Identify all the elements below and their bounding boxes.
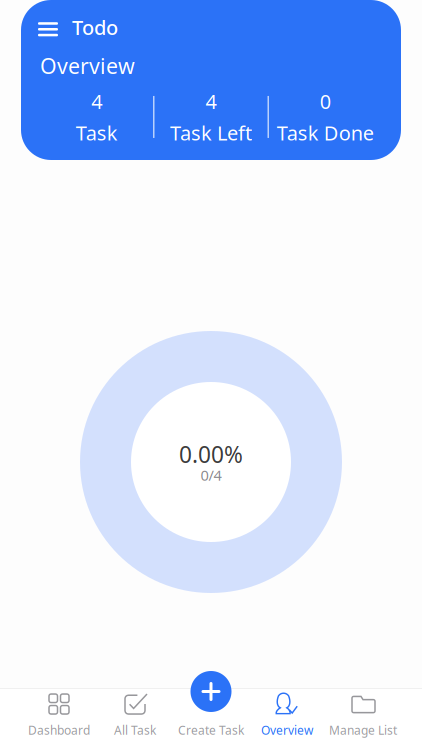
staticText: 0/4	[200, 465, 221, 485]
staticText: Create Task	[178, 722, 244, 738]
button[interactable]: Menu	[34, 14, 62, 40]
staticText: Manage List	[329, 722, 397, 738]
staticText: 4	[91, 88, 102, 114]
staticText: 0	[320, 88, 331, 114]
staticText: All Task	[114, 722, 156, 738]
staticText: Overview	[261, 722, 313, 738]
button[interactable]: Dashboard	[21, 686, 97, 750]
button[interactable]: Overview	[249, 686, 325, 750]
staticText: Task	[76, 119, 118, 146]
button[interactable]: Manage List	[325, 686, 401, 750]
button[interactable]: Create Task	[190, 671, 231, 712]
staticText: Todo	[72, 14, 118, 41]
staticText: Task Done	[277, 119, 374, 146]
staticText: Dashboard	[28, 722, 90, 738]
staticText: 0.00%	[179, 439, 243, 469]
button[interactable]: All Task	[97, 686, 173, 750]
staticText: 4	[205, 88, 216, 114]
staticText: Overview	[40, 52, 135, 80]
staticText: Task Left	[170, 119, 252, 146]
